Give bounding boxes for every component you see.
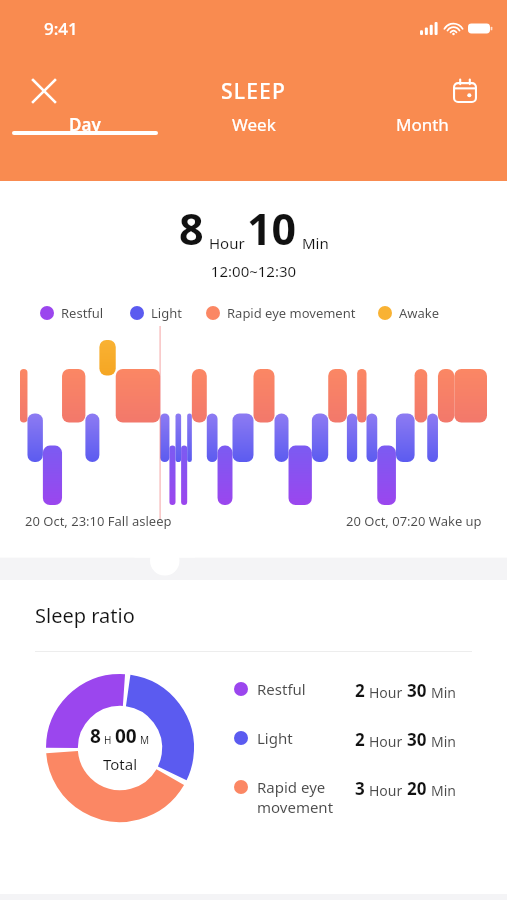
staticText: 30 [407, 728, 427, 751]
staticText: 20 Oct, 23:10 Fall asleep [25, 512, 172, 530]
staticText: Min [431, 683, 456, 702]
staticText: 3 [355, 777, 365, 800]
staticText: 8 [90, 723, 101, 749]
staticText: 20 Oct, 07:20 Wake up [346, 512, 482, 530]
staticText: Month [396, 113, 449, 136]
staticText: Min [302, 233, 329, 253]
button[interactable]: Calendar [443, 69, 487, 113]
staticText: Day [69, 113, 101, 136]
button[interactable]: Day [0, 120, 169, 143]
button[interactable]: Week [169, 120, 338, 143]
staticText: Rapid eye movement [227, 304, 356, 322]
staticText: Sleep ratio [35, 602, 135, 629]
staticText: 30 [407, 679, 427, 702]
staticText: movement [257, 797, 334, 817]
staticText: 2 [355, 728, 365, 751]
staticText: 8 [179, 199, 204, 258]
staticText: Hour [209, 233, 245, 253]
staticText: 00 [115, 723, 137, 749]
button[interactable]: Restful [234, 679, 456, 702]
staticText: 2 [355, 679, 365, 702]
staticText: SLEEP [221, 77, 286, 106]
staticText: Hour [369, 781, 403, 800]
staticText: Restful [61, 304, 104, 322]
staticText: Rapid eye [257, 777, 326, 797]
button[interactable]: Close [22, 69, 66, 113]
staticText: Week [232, 113, 276, 136]
staticText: Total [103, 754, 138, 774]
button[interactable]: Light [234, 728, 456, 751]
staticText: Awake [399, 304, 440, 322]
staticText: Restful [257, 679, 306, 699]
button[interactable]: Rapid eye [234, 777, 456, 817]
staticText: Hour [369, 683, 403, 702]
button[interactable]: Month [338, 120, 507, 143]
staticText: 20 [407, 777, 427, 800]
staticText: 12:00~12:30 [0, 261, 507, 281]
staticText: H [104, 733, 112, 747]
staticText: 9:41 [44, 17, 78, 40]
staticText: Light [151, 304, 182, 322]
staticText: 10 [247, 199, 297, 258]
staticText: Hour [369, 732, 403, 751]
staticText: Light [257, 728, 293, 748]
staticText: M [140, 733, 150, 747]
staticText: Min [431, 732, 456, 751]
staticText: Min [431, 781, 456, 800]
